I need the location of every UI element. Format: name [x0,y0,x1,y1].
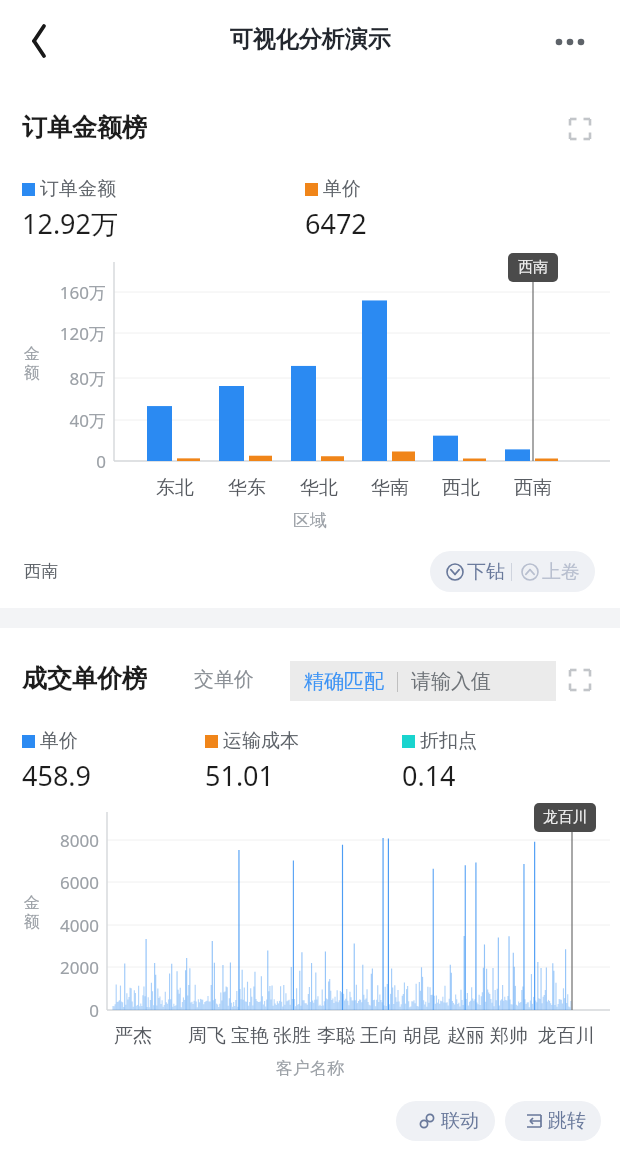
staticText: 龙百川 [526,1024,606,1048]
button[interactable]: Fullscreen [563,112,597,146]
staticText: 胡昆 [382,1024,462,1048]
staticText: 西北 [426,476,496,500]
staticText: 12.92万 [22,205,119,242]
button[interactable]: More options [543,14,597,68]
staticText: 下钻 [467,560,505,584]
staticText: 张胜 [252,1024,332,1048]
staticText: 上卷 [542,560,580,584]
staticText: 160万 [46,281,106,304]
staticText: 120万 [46,322,106,345]
staticText: 金 额 [24,893,40,932]
staticText: 李聪 [296,1024,376,1048]
staticText: 联动 [441,1109,479,1133]
staticText: 8000 [39,829,99,852]
button[interactable]: 跳转 [505,1101,601,1141]
staticText: 成交单价榜 [22,663,147,694]
staticText: 4000 [39,914,99,937]
button[interactable]: 联动 [396,1101,495,1141]
staticText: 0.14 [402,757,456,794]
staticText: 客户名称 [0,1058,620,1079]
staticText: 郑帅 [469,1024,549,1048]
staticText: 金 额 [24,344,40,383]
button[interactable]: 运输成本 [205,727,294,764]
staticText: 折扣点 [420,729,477,753]
staticText: 订单金额榜 [22,112,147,143]
staticText: 6000 [39,871,99,894]
staticText: 交单价 [194,667,254,692]
staticText: 单价 [40,729,78,753]
button[interactable]: 单价 [305,175,367,212]
staticText: 单价 [323,177,361,201]
staticText: 王向 [339,1024,419,1048]
staticText: 精确匹配 [304,669,384,694]
button[interactable]: 折扣点 [402,727,472,764]
staticText: 51.01 [205,757,275,794]
staticText: 西南 [518,258,548,277]
staticText: 区域 [0,510,620,531]
staticText: 宝艳 [210,1024,290,1048]
staticText: 运输成本 [223,729,299,753]
staticText: 458.9 [22,757,92,794]
button[interactable]: Fullscreen [563,663,597,697]
staticText: 6472 [305,205,367,242]
staticText: 可视化分析演示 [0,25,620,54]
button[interactable]: 订单金额 [22,175,119,212]
staticText: 订单金额 [40,177,116,201]
staticText: 西南 [498,476,568,500]
staticText: 40万 [46,409,106,432]
button[interactable]: Back [8,12,66,70]
staticText: 华东 [212,476,282,500]
button[interactable]: 上卷 [521,560,577,584]
button[interactable]: 单价 [22,727,92,764]
staticText: 请输入值 [411,669,491,694]
staticText: 东北 [140,476,210,500]
staticText: 华北 [284,476,354,500]
button[interactable]: 精确匹配 [290,661,556,701]
staticText: 严杰 [93,1024,173,1048]
staticText: 80万 [46,367,106,390]
staticText: 华南 [355,476,425,500]
staticText: 2000 [39,956,99,979]
staticText: 龙百川 [543,808,588,827]
staticText: 跳转 [548,1109,586,1133]
staticText: 0 [46,450,106,473]
button[interactable]: 下钻 [446,560,502,584]
staticText: 赵丽 [426,1024,506,1048]
staticText: 西南 [24,561,58,582]
staticText: 周飞 [167,1024,247,1048]
staticText: 0 [39,999,99,1022]
